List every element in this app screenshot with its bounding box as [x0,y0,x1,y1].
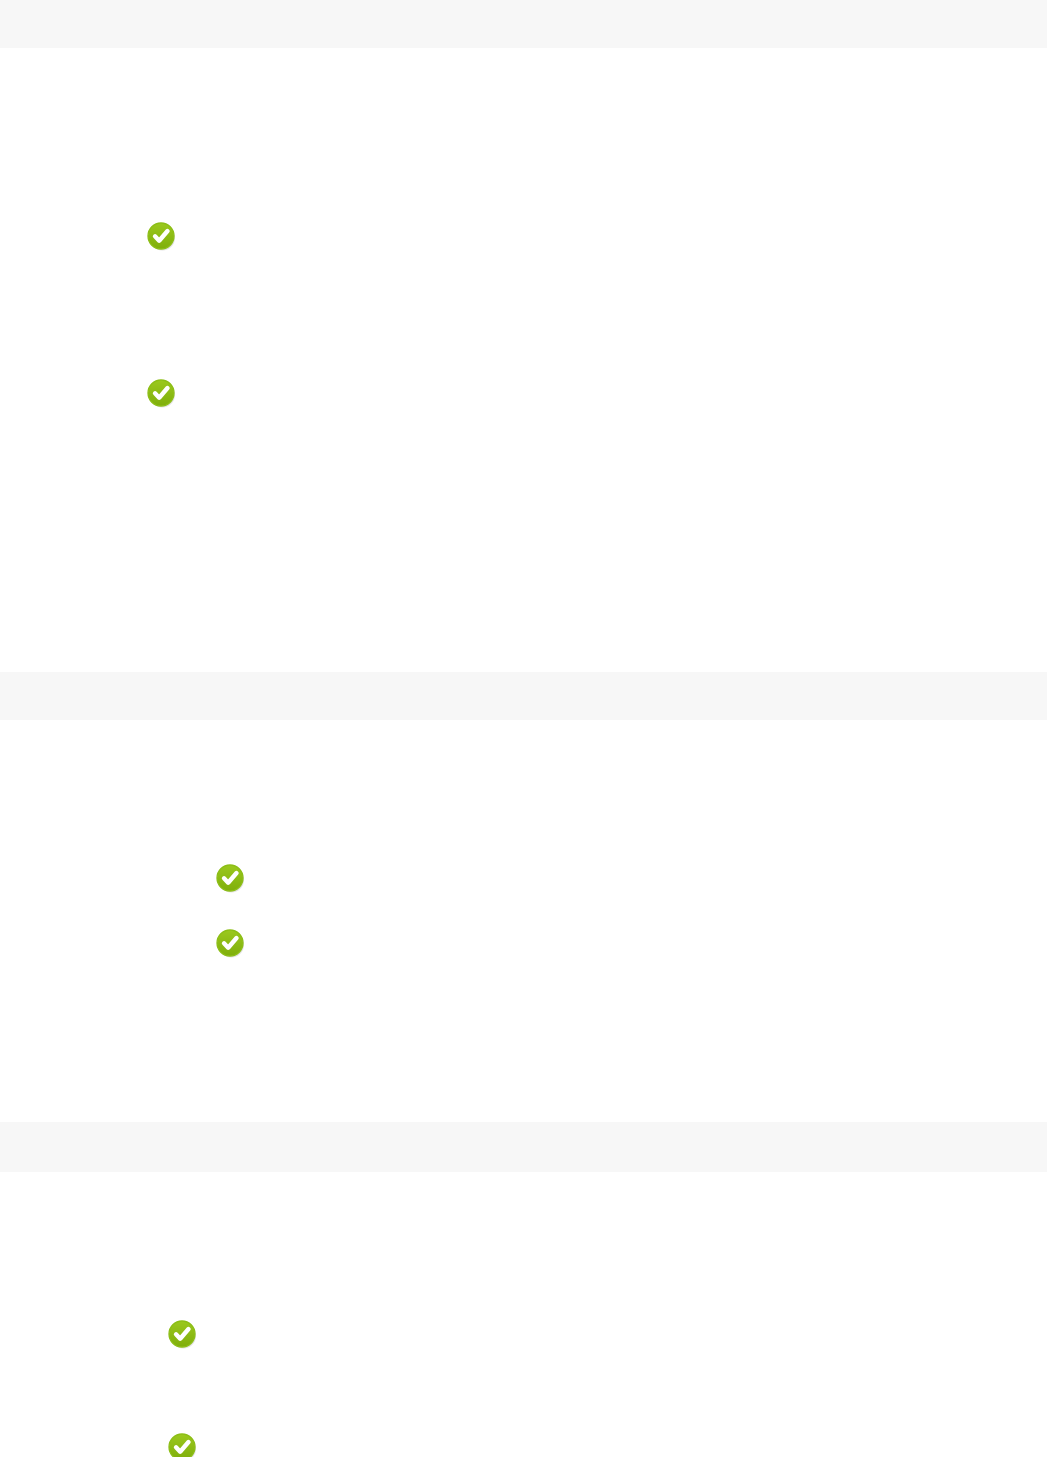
button[interactable]: Field validated [213,926,247,960]
button[interactable]: Field validated [213,861,247,895]
button[interactable]: Field validated [144,219,178,253]
button[interactable]: Field validated [165,1317,199,1351]
button[interactable]: Field validated [144,376,178,410]
button[interactable]: Field validated [165,1430,199,1457]
